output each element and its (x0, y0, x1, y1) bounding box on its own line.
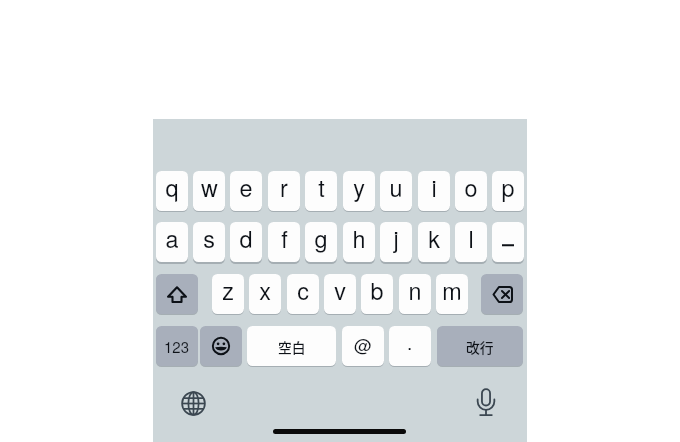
button[interactable]: p (492, 171, 524, 211)
staticText: o (464, 171, 478, 204)
button[interactable]: m (436, 274, 468, 314)
staticText: u (389, 171, 403, 204)
button[interactable]: Change keyboard language (175, 385, 211, 421)
button[interactable]: x (249, 274, 281, 314)
staticText: h (352, 222, 366, 255)
staticText: b (370, 274, 384, 307)
button[interactable]: s (193, 222, 225, 262)
button[interactable]: Numbers (156, 326, 198, 366)
button[interactable]: Emoji (200, 326, 242, 366)
staticText: @ (354, 332, 372, 357)
staticText: 123 (164, 336, 190, 357)
button[interactable]: a (156, 222, 188, 262)
staticText: s (203, 222, 215, 255)
button[interactable]: @ (342, 326, 384, 366)
staticText: f (281, 222, 288, 255)
button[interactable]: i (418, 171, 450, 211)
staticText: n (408, 274, 422, 307)
button[interactable]: j (380, 222, 412, 262)
button[interactable]: Backspace (481, 274, 523, 314)
staticText: g (314, 222, 328, 255)
button[interactable]: d (230, 222, 262, 262)
button[interactable]: Dictation (468, 384, 504, 420)
staticText: t (318, 171, 325, 204)
button[interactable]: . (389, 326, 431, 366)
staticText: k (428, 222, 440, 255)
button[interactable]: b (361, 274, 393, 314)
staticText: r (280, 171, 288, 204)
button[interactable]: h (343, 222, 375, 262)
button[interactable]: w (193, 171, 225, 211)
staticText: d (239, 222, 253, 255)
button[interactable]: v (324, 274, 356, 314)
button[interactable]: n (399, 274, 431, 314)
staticText: 改行 (466, 337, 494, 357)
button[interactable]: Return (437, 326, 523, 366)
staticText: q (165, 171, 179, 204)
button[interactable]: t (305, 171, 337, 211)
button[interactable]: r (268, 171, 300, 211)
button[interactable]: f (268, 222, 300, 262)
staticText: z (222, 274, 234, 307)
staticText: p (501, 171, 515, 204)
button[interactable]: Shift (156, 274, 198, 314)
button[interactable]: e (230, 171, 262, 211)
staticText: c (297, 274, 309, 307)
button[interactable]: u (380, 171, 412, 211)
staticText: j (393, 222, 399, 255)
staticText: e (239, 171, 253, 204)
button[interactable]: o (455, 171, 487, 211)
staticText: x (259, 274, 271, 307)
button[interactable]: 空白 (247, 326, 336, 366)
button[interactable]: Underscore (492, 222, 524, 262)
staticText: y (353, 171, 365, 204)
staticText: v (334, 274, 346, 307)
button[interactable]: z (212, 274, 244, 314)
staticText: i (431, 171, 437, 204)
button[interactable]: k (418, 222, 450, 262)
button[interactable]: q (156, 171, 188, 211)
staticText: a (165, 222, 179, 255)
staticText: l (468, 222, 474, 255)
staticText: w (201, 171, 218, 204)
staticText: . (407, 328, 413, 355)
button[interactable]: l (455, 222, 487, 262)
staticText: m (442, 274, 462, 307)
button[interactable]: c (287, 274, 319, 314)
staticText: 空白 (278, 337, 306, 357)
button[interactable]: g (305, 222, 337, 262)
button[interactable]: y (343, 171, 375, 211)
